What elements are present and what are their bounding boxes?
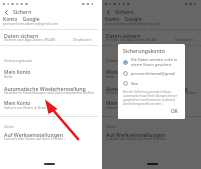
staticText: Nicht (4, 75, 12, 79)
button[interactable]: Zurueck (2, 8, 10, 16)
staticText: persoenliche.adresse@gmail.com (105, 21, 161, 26)
staticText: Sicherungskonto (123, 47, 165, 54)
button[interactable]: Startseite (137, 159, 167, 168)
staticText: Automatische Wiederherstellung (106, 85, 188, 92)
staticText: Die Daten werden nicht in einem Konto ge… (131, 57, 178, 67)
staticText: Auf Werkseinstellungen (106, 131, 166, 138)
staticText: Mein Konto (4, 69, 31, 76)
button[interactable]: Startseite (34, 159, 64, 168)
button[interactable]: Mein Konto (0, 100, 98, 112)
staticText: Nicht (106, 75, 114, 79)
staticText: Sichern (13, 8, 32, 15)
button[interactable]: Daten sichern (0, 32, 98, 44)
button[interactable]: Auf Werkseinstellungen (102, 131, 201, 143)
staticText: Daten sichern (4, 32, 39, 39)
button[interactable]: Die Daten werden nicht in einem Konto ge… (123, 57, 180, 67)
button[interactable]: persoenlichemail@gmail (123, 71, 180, 76)
staticText: Loescht alle Daten auf dem Telefon (4, 136, 64, 141)
button[interactable]: Konto Google (0, 16, 98, 27)
staticText: Gesicherte Einstellungen und Daten wiede… (106, 90, 196, 95)
staticText: Deaktiviert (73, 37, 92, 42)
staticText: Auf Werkseinstellungen (4, 131, 64, 138)
staticText: persoenlichemail@gmail (131, 71, 175, 76)
button[interactable]: Mein Konto (102, 100, 201, 112)
staticText: Sicherungskonto (4, 58, 33, 63)
staticText: Mein Konto (106, 100, 133, 107)
button[interactable]: Konto Google (102, 16, 201, 27)
button[interactable]: Daten sichern (102, 32, 201, 44)
staticText: Daten (106, 124, 117, 129)
button[interactable]: Automatische Wiederherstellung (102, 85, 201, 97)
button[interactable]: Auf Werkseinstellungen (0, 131, 98, 143)
staticText: Sichern von Daten in Drive (106, 105, 149, 110)
staticText: Daten (4, 124, 15, 129)
staticText: Sicherungskonto (106, 58, 135, 63)
staticText: Bei der Sicherung werden Daten automatis… (123, 90, 178, 106)
staticText: Sichern von App-Daten, WLAN (106, 37, 157, 42)
staticText: Konto Google (3, 16, 40, 23)
staticText: OK (171, 108, 178, 115)
staticText: Neu (131, 81, 139, 86)
staticText: Sichern von App-Daten, WLAN (4, 37, 55, 42)
button[interactable]: Mein Konto (102, 69, 201, 80)
staticText: Loescht alle Daten auf dem Telefon (106, 136, 166, 141)
staticText: Daten sichern (106, 32, 141, 39)
staticText: Gesicherte Einstellungen und Daten wiede… (4, 90, 94, 95)
staticText: persoenliche.adresse@gmail.com (3, 21, 59, 26)
staticText: Deaktiviert (175, 37, 194, 42)
button[interactable]: Automatische Wiederherstellung (0, 85, 98, 97)
button[interactable]: OK (169, 107, 180, 116)
staticText: Mein Konto (106, 69, 133, 76)
button[interactable]: Neu (123, 81, 180, 86)
button[interactable]: Zurueck (104, 8, 112, 16)
staticText: Mein Konto (4, 100, 31, 107)
staticText: Sichern von Daten in Drive (4, 105, 47, 110)
staticText: Konto Google (105, 16, 142, 23)
staticText: Automatische Wiederherstellung (4, 85, 86, 92)
staticText: Sichern (115, 8, 134, 15)
button[interactable]: Mein Konto (0, 69, 98, 80)
